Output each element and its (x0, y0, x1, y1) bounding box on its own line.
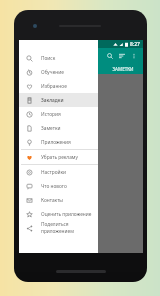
staticText: Избранное (41, 83, 67, 90)
staticText: ЗАМЕТКИ (112, 66, 134, 72)
staticText: 8:27 (130, 41, 140, 48)
button[interactable]: ИСТОРИЯ (61, 63, 102, 74)
staticText: Что нового (41, 183, 67, 190)
button[interactable]: ЗАМЕТКИ (102, 63, 143, 74)
button[interactable]: Оценить приложение (19, 207, 98, 221)
button[interactable]: Контакты (19, 193, 98, 207)
button[interactable]: Поделиться приложением (19, 221, 98, 235)
button[interactable]: Обучение (19, 65, 98, 79)
button[interactable]: Sort (116, 50, 128, 62)
button[interactable]: Search (104, 50, 116, 62)
staticText: Заметки (41, 125, 61, 132)
staticText: Обучение (41, 69, 64, 76)
button[interactable]: Что нового (19, 179, 98, 193)
button[interactable]: Заметки (19, 121, 98, 135)
staticText: нет закладок (65, 152, 97, 159)
staticText: Поиск (41, 55, 56, 62)
button[interactable]: Приложения (19, 135, 98, 149)
staticText: Закладки (41, 97, 64, 104)
button[interactable]: История (19, 107, 98, 121)
staticText: ЗАКЛАДКИ (28, 66, 53, 72)
button[interactable]: ЗАКЛАДКИ (19, 63, 61, 74)
staticText: Убрать рекламу (41, 154, 78, 161)
button[interactable]: Избранное (19, 79, 98, 93)
staticText: Поделиться приложением (41, 221, 98, 235)
staticText: История (41, 111, 61, 118)
button[interactable]: Настройки (19, 165, 98, 179)
staticText: Настройки (41, 169, 67, 176)
button[interactable]: Убрать рекламу (19, 150, 98, 164)
button[interactable]: More options (128, 50, 140, 62)
staticText: Приложения (41, 139, 71, 146)
staticText: Контакты (41, 197, 64, 204)
button[interactable]: Закладки (19, 93, 98, 107)
staticText: Оценить приложение (41, 211, 92, 218)
button[interactable]: Поиск (19, 51, 98, 65)
